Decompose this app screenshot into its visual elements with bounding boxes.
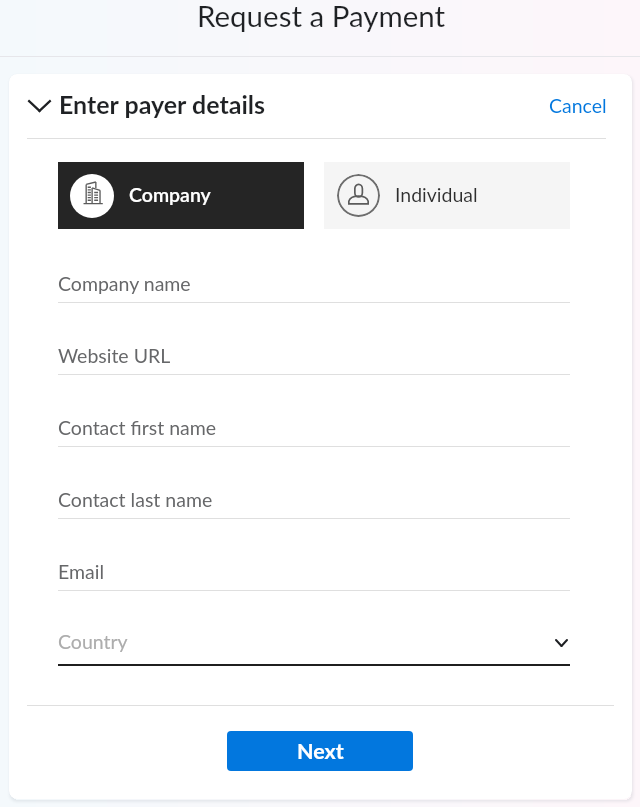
staticText: Website URL	[58, 344, 171, 367]
staticText: Enter payer details	[59, 89, 265, 119]
button[interactable]: Company	[58, 162, 304, 229]
staticText: Request a Payment	[197, 0, 446, 33]
button[interactable]: Contact last name	[58, 476, 570, 519]
staticText: Contact last name	[58, 488, 213, 511]
staticText: Company name	[58, 272, 191, 295]
staticText: Cancel	[549, 94, 607, 117]
staticText: Email	[58, 560, 104, 583]
button[interactable]: Next	[227, 731, 413, 771]
button[interactable]: Email	[58, 548, 570, 591]
button[interactable]: Contact first name	[58, 404, 570, 447]
other: Collapse section	[28, 100, 51, 112]
button[interactable]: Website URL	[58, 332, 570, 375]
button[interactable]: Collapse section	[18, 84, 284, 124]
other: Select country	[555, 639, 568, 647]
button[interactable]: Individual	[324, 162, 570, 229]
staticText: Country	[58, 630, 128, 653]
staticText: Next	[297, 738, 344, 764]
staticText: Contact first name	[58, 416, 217, 439]
staticText: Company	[129, 183, 211, 206]
button[interactable]: Country	[58, 622, 570, 665]
button[interactable]: Cancel	[542, 92, 614, 118]
staticText: Individual	[395, 183, 478, 206]
button[interactable]: Company name	[58, 260, 570, 303]
